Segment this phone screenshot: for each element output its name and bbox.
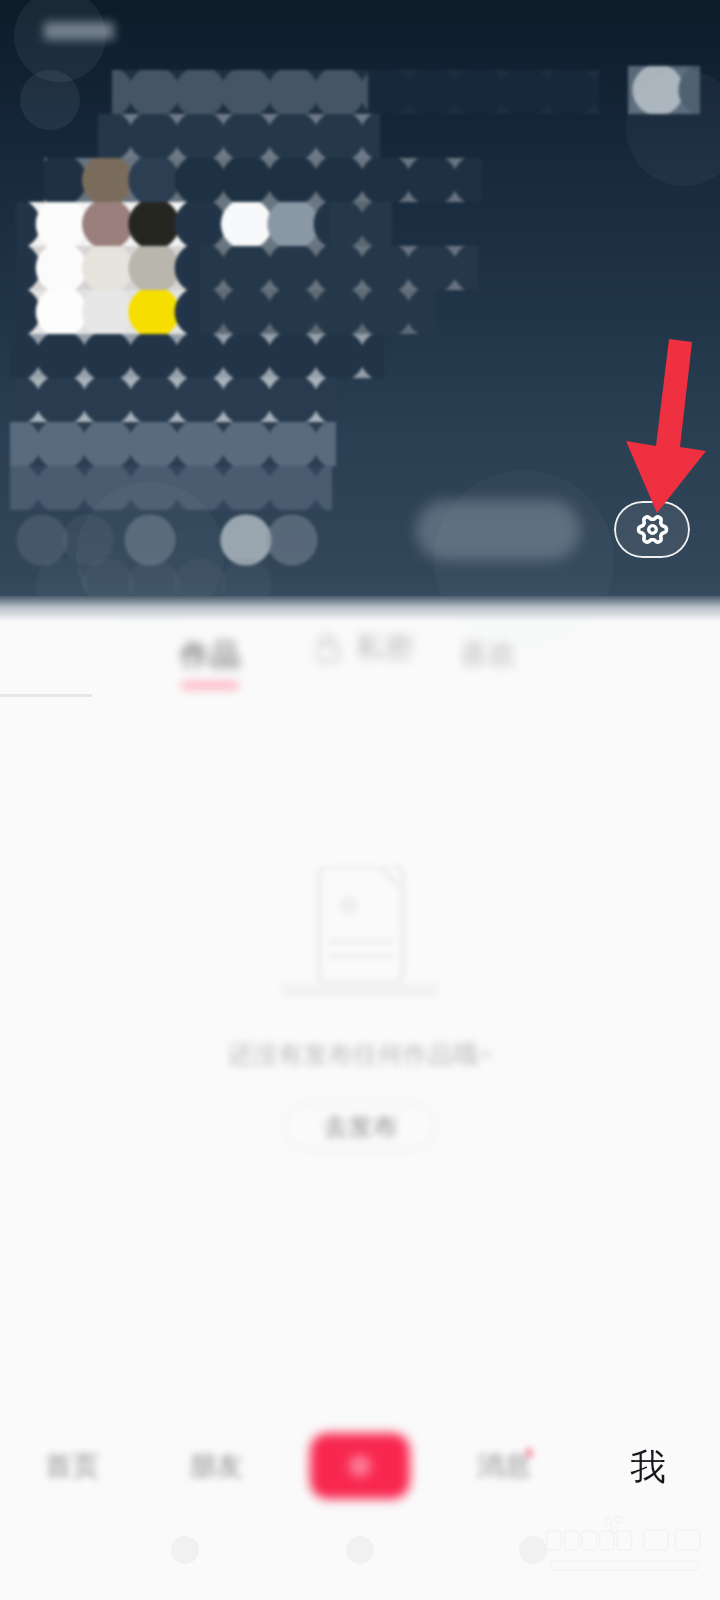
- staticText: 去发布: [323, 1111, 398, 1142]
- button[interactable]: Edit profile: [416, 500, 580, 560]
- staticText: 还没有发布任何作品哦~: [228, 1036, 493, 1070]
- staticText: 消息: [477, 1449, 531, 1483]
- button[interactable]: 消息: [432, 1408, 576, 1524]
- button[interactable]: 我: [576, 1408, 720, 1524]
- button[interactable]: Settings: [614, 501, 690, 558]
- staticText: 朋友: [189, 1449, 243, 1483]
- button[interactable]: 喜欢: [442, 624, 534, 704]
- button[interactable]: Create: [288, 1408, 432, 1524]
- button[interactable]: 朋友: [144, 1408, 288, 1524]
- staticText: 首页: [45, 1449, 99, 1483]
- button[interactable]: 作品: [166, 624, 254, 704]
- staticText: 作品: [180, 636, 240, 674]
- staticText: 我: [630, 1444, 666, 1489]
- button[interactable]: 私密: [300, 624, 430, 704]
- staticText: 喜欢: [459, 636, 517, 673]
- staticText: 私密: [356, 629, 414, 666]
- button[interactable]: 首页: [0, 1408, 144, 1524]
- button[interactable]: 去发布: [283, 1102, 437, 1150]
